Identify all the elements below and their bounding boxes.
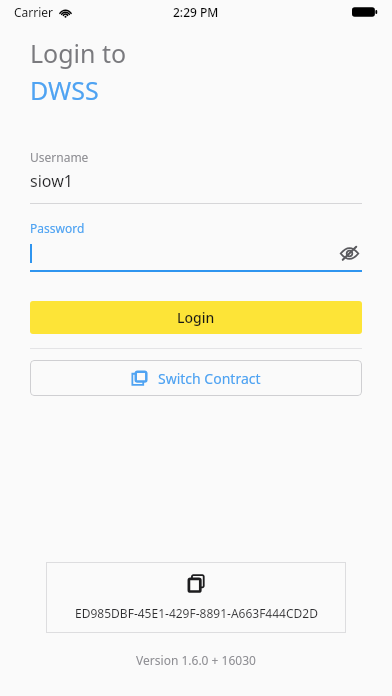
staticText: Password bbox=[30, 220, 85, 236]
button[interactable]: Password bbox=[30, 220, 362, 272]
staticText: Version 1.6.0 + 16030 bbox=[0, 652, 392, 668]
button[interactable]: Login bbox=[30, 301, 362, 334]
staticText: Switch Contract bbox=[158, 369, 261, 388]
staticText: Username bbox=[30, 149, 89, 165]
staticText: ED985DBF-45E1-429F-8891-A663F444CD2D bbox=[75, 605, 318, 621]
button[interactable]: Switch Contract bbox=[30, 360, 362, 396]
staticText: siow1 bbox=[30, 170, 73, 192]
staticText: Login bbox=[177, 308, 215, 327]
button[interactable]: Username bbox=[30, 149, 362, 204]
button[interactable]: Show password bbox=[336, 240, 362, 266]
staticText: DWSS bbox=[30, 73, 99, 107]
staticText: Login to bbox=[30, 36, 127, 70]
button[interactable]: ED985DBF-45E1-429F-8891-A663F444CD2D bbox=[46, 562, 346, 633]
staticText: 2:29 PM bbox=[173, 4, 219, 20]
staticText: Carrier bbox=[14, 4, 54, 20]
